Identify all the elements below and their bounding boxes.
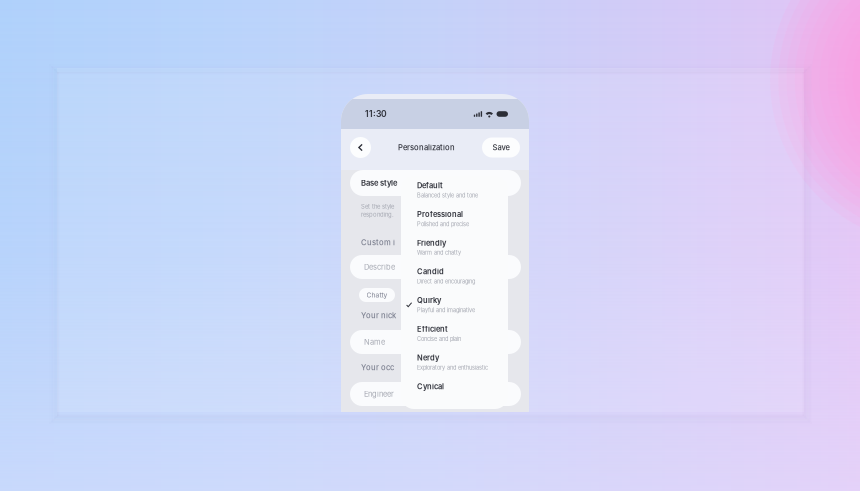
button[interactable]: Nerdy <box>405 353 505 375</box>
staticText: Chatty <box>366 291 387 299</box>
staticText: Nerdy <box>417 353 439 362</box>
staticText: Your occ <box>361 363 394 372</box>
staticText: Your nick <box>361 311 396 320</box>
staticText: responding. <box>361 211 394 218</box>
staticText: Warm and chatty <box>417 249 461 256</box>
staticText: Professional <box>417 210 463 219</box>
staticText: Friendly <box>417 238 446 247</box>
staticText: Quirky <box>417 296 441 305</box>
staticText: Custom i <box>361 238 395 247</box>
staticText: Engineer <box>364 389 394 398</box>
staticText: Set the style <box>361 203 394 210</box>
button[interactable]: Engineer <box>350 382 521 406</box>
button[interactable]: Default <box>405 181 505 203</box>
staticText: Exploratory and enthusiastic <box>417 364 488 371</box>
staticText: Efficient <box>417 324 448 333</box>
button[interactable]: Efficient <box>405 324 505 346</box>
staticText: Base style <box>361 178 397 188</box>
button[interactable]: Friendly <box>405 238 505 260</box>
staticText: Cynical <box>417 382 444 391</box>
staticText: Playful and imaginative <box>417 307 475 314</box>
staticText: Save <box>492 143 509 152</box>
button[interactable]: Cynical <box>405 382 505 404</box>
button[interactable]: Chatty <box>359 288 395 302</box>
button[interactable]: Describe <box>350 255 521 279</box>
staticText: Direct and encouraging <box>417 278 475 285</box>
button[interactable]: Professional <box>405 210 505 232</box>
staticText: Candid <box>417 267 444 276</box>
button[interactable]: Candid <box>405 267 505 289</box>
staticText: Describe <box>364 262 395 271</box>
staticText: Default <box>417 181 443 190</box>
button[interactable]: Name <box>350 330 521 354</box>
staticText: 11:30 <box>365 109 387 119</box>
staticText: Name <box>364 337 385 346</box>
button[interactable]: Quirky <box>405 296 505 318</box>
button[interactable]: Save <box>482 137 520 157</box>
staticText: Polished and precise <box>417 221 469 227</box>
staticText: Personalization <box>398 143 455 152</box>
staticText: Balanced style and tone <box>417 192 478 199</box>
staticText: Concise and plain <box>417 335 461 342</box>
button[interactable]: Back <box>350 137 371 158</box>
